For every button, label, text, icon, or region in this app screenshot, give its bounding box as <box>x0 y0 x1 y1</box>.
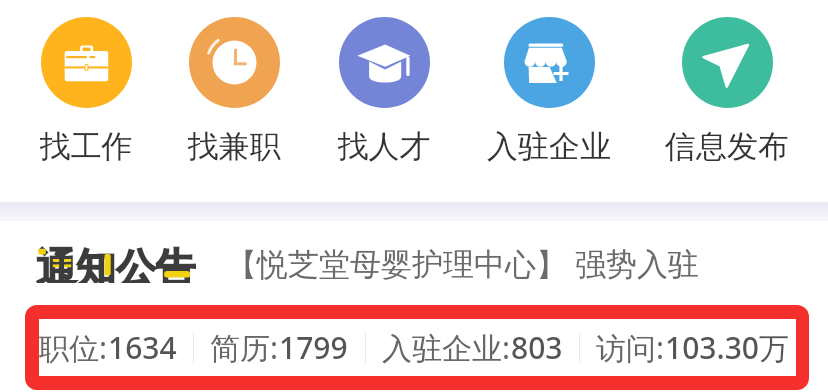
staticText: 访问: <box>596 327 665 368</box>
staticText: 找人才 <box>319 127 449 166</box>
staticText: 入驻企业: <box>382 327 511 368</box>
staticText: 803 <box>511 327 563 368</box>
staticText: 通知公告 <box>36 243 196 283</box>
button[interactable]: 职位: <box>39 319 796 376</box>
button[interactable]: 找兼职 <box>169 0 299 166</box>
staticText: 找工作 <box>21 127 151 166</box>
staticText: 103.30万 <box>665 327 789 368</box>
staticText: 信息发布 <box>662 127 792 166</box>
staticText: 找兼职 <box>169 127 299 166</box>
staticText: 1634 <box>108 327 177 368</box>
staticText: 1799 <box>279 327 348 368</box>
staticText: 职位: <box>39 327 108 368</box>
button[interactable]: 入驻企业 <box>484 0 614 166</box>
button[interactable]: 找工作 <box>21 0 151 166</box>
button[interactable]: 找人才 <box>319 0 449 166</box>
staticText: 【悦芝堂母婴护理中心】 强势入驻 <box>226 242 700 284</box>
button[interactable]: 通知公告 <box>0 221 828 305</box>
button[interactable]: 信息发布 <box>662 0 792 166</box>
staticText: 入驻企业 <box>484 127 614 166</box>
staticText: 简历: <box>210 327 279 368</box>
